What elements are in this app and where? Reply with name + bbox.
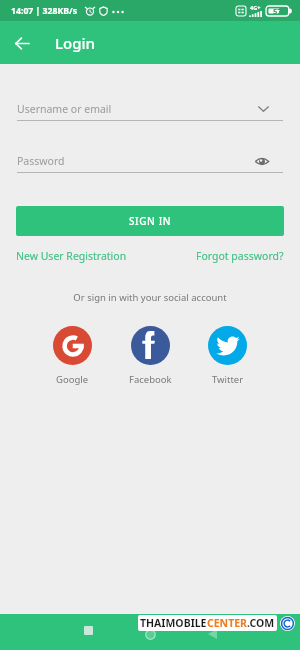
staticText: Username or email [17, 102, 258, 116]
button[interactable]: New User Registration [16, 249, 127, 263]
staticText: Password [17, 154, 255, 168]
button[interactable]: SIGN IN [16, 206, 284, 236]
staticText: .COM [247, 616, 275, 630]
staticText: 57 [273, 6, 282, 16]
staticText: Login [55, 33, 95, 53]
button[interactable]: Show accounts [258, 106, 269, 112]
staticText: Google [56, 373, 89, 386]
staticText: THAIMOBILE [140, 616, 207, 630]
button[interactable]: Facebook [129, 326, 172, 386]
button[interactable]: Google [53, 326, 92, 386]
button[interactable]: Home [139, 623, 161, 645]
button[interactable]: Twitter [208, 326, 247, 386]
button[interactable]: Forgot password? [196, 249, 284, 263]
button[interactable]: Back [201, 623, 223, 645]
staticText: 4G+ [250, 4, 261, 11]
staticText: CENTER [207, 616, 247, 630]
button[interactable]: Recent apps [77, 619, 99, 641]
staticText: Or sign in with your social account [0, 291, 300, 304]
staticText: SIGN IN [129, 214, 172, 228]
button[interactable]: Show password [255, 157, 269, 166]
staticText: Facebook [129, 373, 172, 386]
staticText: Twitter [212, 373, 244, 386]
staticText: 14:07 | 328KB/s [11, 5, 78, 17]
button[interactable]: Back [6, 27, 38, 59]
